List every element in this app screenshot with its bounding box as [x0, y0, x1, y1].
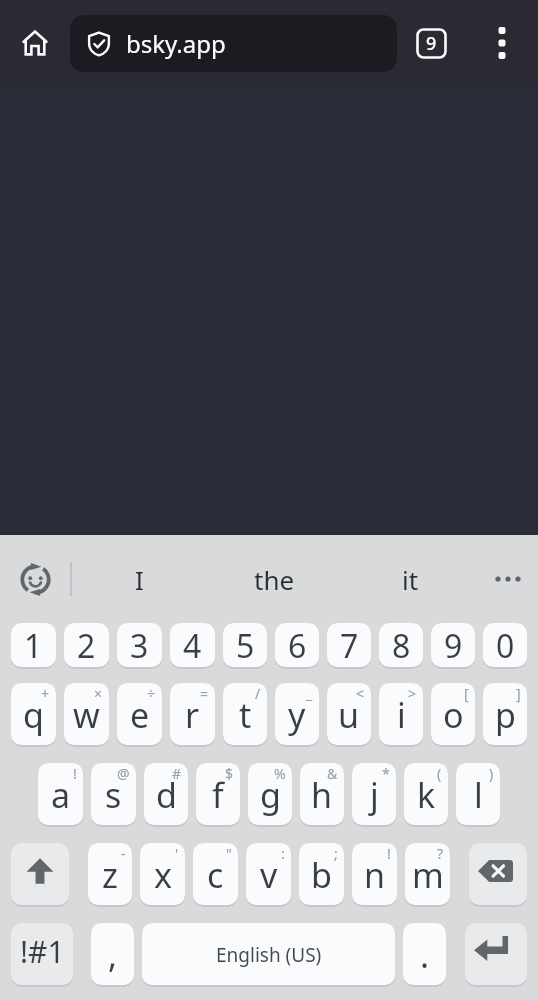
button[interactable]: ) [456, 763, 500, 827]
staticText: y [288, 692, 306, 738]
button[interactable]: < [327, 683, 371, 747]
button[interactable]: % [248, 763, 292, 827]
button[interactable]: _ [275, 683, 319, 747]
button[interactable] [465, 0, 538, 86]
staticText: 1 [24, 624, 43, 668]
button[interactable]: $ [196, 763, 240, 827]
staticText: × [94, 684, 103, 703]
button[interactable] [478, 535, 538, 623]
button[interactable]: " [193, 843, 238, 907]
staticText: ! [73, 764, 77, 783]
staticText: r [185, 692, 200, 738]
staticText: ÷ [147, 684, 156, 703]
staticText: n [364, 852, 386, 898]
button[interactable]: the [206, 535, 342, 623]
button[interactable]: ! [352, 843, 397, 907]
staticText: 3 [130, 624, 149, 668]
staticText: x [154, 852, 172, 898]
button[interactable]: + [11, 683, 56, 747]
staticText: q [23, 692, 44, 738]
button[interactable]: ! [38, 763, 83, 827]
button[interactable]: × [64, 683, 109, 747]
staticText: = [200, 684, 209, 703]
button[interactable] [469, 843, 527, 907]
staticText: 9 [444, 624, 463, 668]
button[interactable]: # [144, 763, 188, 827]
staticText: v [260, 852, 278, 898]
button[interactable]: bsky.app [70, 15, 397, 72]
staticText: c [207, 852, 224, 898]
button[interactable]: 5 [223, 623, 267, 669]
staticText: o [443, 692, 464, 738]
button[interactable] [11, 843, 69, 907]
button[interactable]: ( [404, 763, 448, 827]
staticText: b [311, 852, 332, 898]
button[interactable] [0, 535, 70, 623]
staticText: p [495, 692, 516, 738]
staticText: h [311, 772, 333, 818]
staticText: bsky.app [126, 27, 226, 60]
button[interactable]: 6 [275, 623, 319, 669]
staticText: the [254, 562, 295, 597]
staticText: , [108, 932, 118, 978]
button[interactable]: * [352, 763, 396, 827]
staticText: f [212, 772, 224, 818]
button[interactable]: ; [299, 843, 344, 907]
button[interactable]: I [72, 535, 206, 623]
button[interactable] [0, 0, 70, 86]
button[interactable]: 0 [483, 623, 527, 669]
staticText: * [382, 764, 390, 783]
staticText: ; [334, 844, 338, 863]
staticText: i [397, 692, 406, 738]
button[interactable]: 8 [379, 623, 423, 669]
button[interactable]: > [379, 683, 423, 747]
button[interactable]: [ [431, 683, 475, 747]
button[interactable]: , [91, 923, 134, 987]
button[interactable]: 4 [170, 623, 215, 669]
button[interactable]: 1 [11, 623, 56, 669]
staticText: [ [464, 684, 469, 703]
button[interactable]: ? [405, 843, 450, 907]
button[interactable]: - [88, 843, 132, 907]
staticText: / [255, 684, 261, 703]
staticText: !#1 [20, 931, 65, 972]
button[interactable]: : [246, 843, 291, 907]
button[interactable]: 9 [397, 0, 465, 86]
button[interactable] [465, 923, 527, 987]
button[interactable]: 2 [64, 623, 109, 669]
staticText: ) [489, 764, 494, 783]
button[interactable]: English (US) [142, 923, 395, 987]
staticText: " [226, 844, 232, 863]
staticText: < [356, 684, 365, 703]
button[interactable]: / [223, 683, 267, 747]
staticText: ' [175, 844, 179, 863]
staticText: z [102, 852, 118, 898]
staticText: English (US) [216, 942, 322, 968]
button[interactable]: = [170, 683, 215, 747]
button[interactable]: it [342, 535, 478, 623]
staticText: ! [387, 844, 391, 863]
staticText: ? [437, 844, 444, 863]
staticText: 5 [236, 624, 255, 668]
button[interactable]: 3 [117, 623, 162, 669]
staticText: . [420, 932, 430, 978]
button[interactable]: @ [91, 763, 136, 827]
button[interactable]: !#1 [11, 923, 73, 987]
staticText: I [135, 562, 144, 597]
button[interactable]: ' [140, 843, 185, 907]
button[interactable]: & [300, 763, 344, 827]
button[interactable]: 9 [431, 623, 475, 669]
staticText: ] [516, 684, 521, 703]
staticText: 7 [340, 624, 359, 668]
staticText: e [130, 692, 150, 738]
staticText: 6 [288, 624, 307, 668]
button[interactable]: 7 [327, 623, 371, 669]
staticText: it [402, 562, 419, 597]
staticText: @ [117, 764, 130, 783]
button[interactable]: . [403, 923, 446, 987]
staticText: - [121, 844, 126, 863]
staticText: d [156, 772, 177, 818]
button[interactable]: ] [483, 683, 527, 747]
staticText: 4 [183, 624, 202, 668]
button[interactable]: ÷ [117, 683, 162, 747]
